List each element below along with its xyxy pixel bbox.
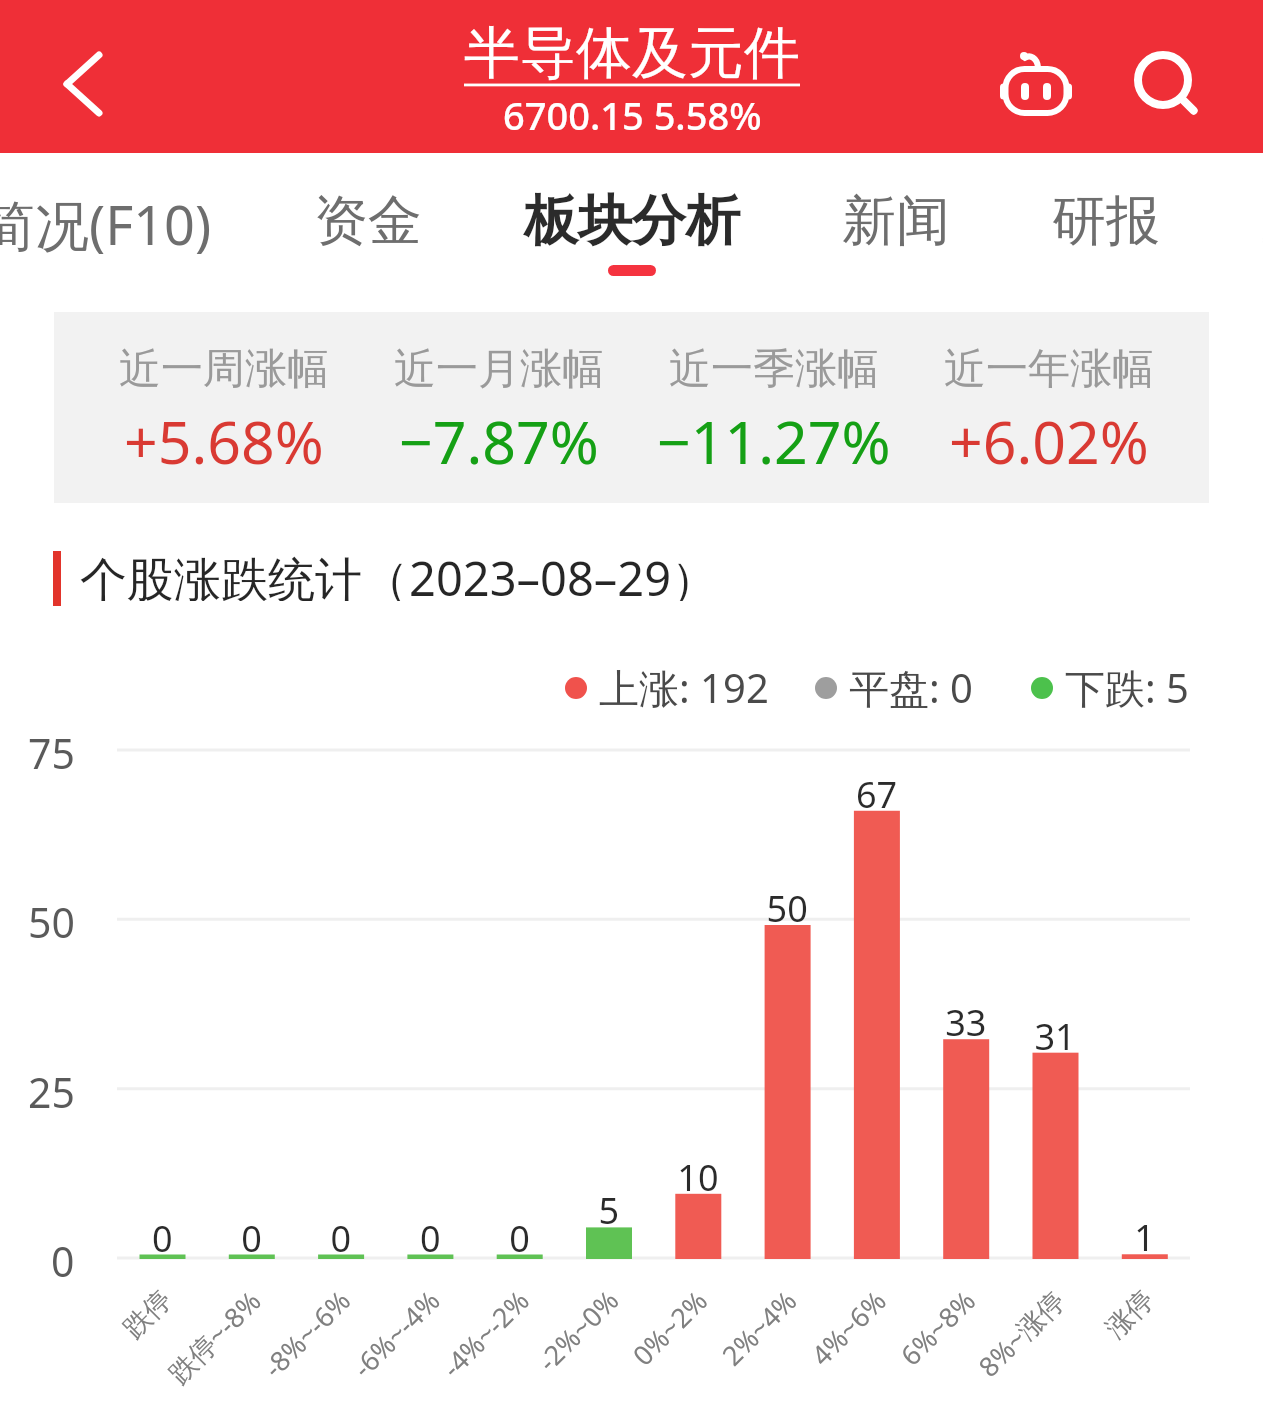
staticText: 下跌: 5 <box>1065 660 1189 715</box>
button[interactable]: Back <box>26 19 142 135</box>
staticText: 近一季涨幅 <box>669 343 879 396</box>
staticText: 板块分析 <box>524 187 740 255</box>
button[interactable]: 上涨: 192 <box>565 660 769 715</box>
staticText: +5.68% <box>124 401 324 481</box>
staticText: 个股涨跌统计（2023–08–29） <box>80 546 719 601</box>
staticText: −7.87% <box>399 401 599 481</box>
button[interactable]: Search <box>1109 22 1219 132</box>
staticText: 简况(F10) <box>0 187 212 261</box>
staticText: 新闻 <box>842 187 950 255</box>
staticText: +6.02% <box>949 401 1149 481</box>
button[interactable]: 新闻 <box>842 153 950 301</box>
staticText: −11.27% <box>657 401 891 481</box>
staticText: 6700.15 5.58% <box>503 89 762 141</box>
staticText: 近一周涨幅 <box>119 343 329 396</box>
staticText: 近一年涨幅 <box>944 343 1154 396</box>
button[interactable]: AI assistant <box>981 22 1091 132</box>
staticText: 平盘: 0 <box>849 660 973 715</box>
button[interactable]: 平盘: 0 <box>815 660 973 715</box>
button[interactable]: 下跌: 5 <box>1031 660 1189 715</box>
staticText: 近一月涨幅 <box>394 343 604 396</box>
staticText: 资金 <box>314 187 422 255</box>
staticText: 研报 <box>1052 187 1160 255</box>
button[interactable]: 板块分析 <box>524 153 740 301</box>
staticText: 半导体及元件 <box>464 18 800 89</box>
staticText: 上涨: 192 <box>599 660 769 715</box>
button[interactable]: 资金 <box>314 153 422 301</box>
button[interactable]: 简况(F10) <box>0 153 212 301</box>
button[interactable]: 研报 <box>1052 153 1160 301</box>
